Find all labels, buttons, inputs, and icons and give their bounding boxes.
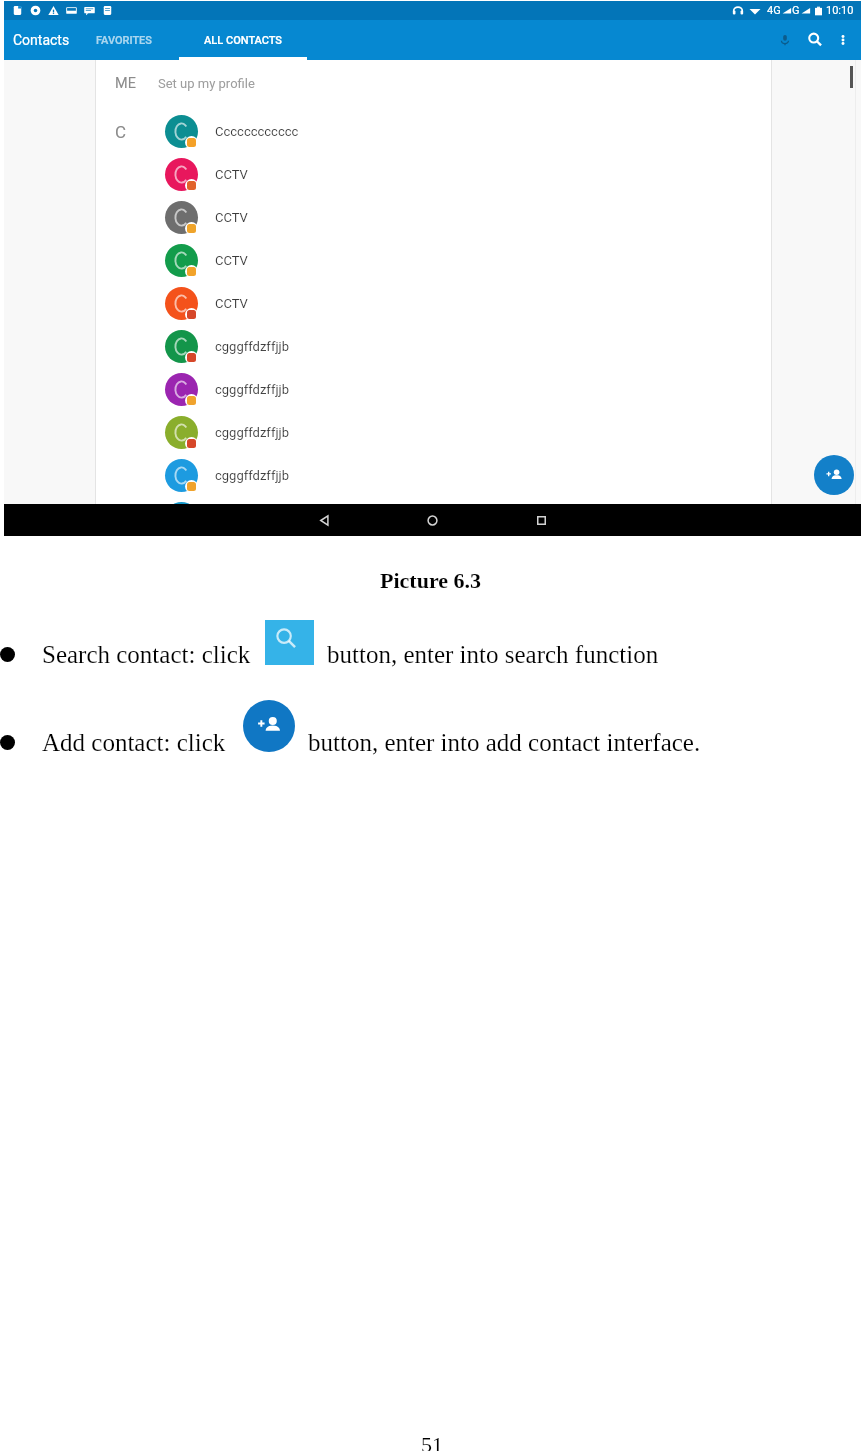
staticText: CCTV	[215, 167, 248, 182]
staticText: cgggffdzffjjb	[215, 425, 289, 440]
staticText: button, enter into search function	[327, 641, 659, 669]
button[interactable]: CCTV	[96, 153, 771, 196]
staticText: Cccccccccccc	[215, 124, 299, 139]
button[interactable]: cgggffdzffjjb	[96, 368, 771, 411]
staticText: cgggffdzffjjb	[215, 382, 289, 397]
staticText: CCTV	[215, 210, 248, 225]
staticText: FAVORITES	[96, 34, 152, 47]
staticText: 4G	[767, 4, 781, 17]
button[interactable]: Cccccccccccc	[96, 110, 771, 153]
staticText: Add contact: click	[42, 729, 226, 757]
button[interactable]: cgggffdzffjjb	[96, 454, 771, 497]
button[interactable]: cgggffdzffjjb	[96, 497, 771, 504]
staticText: CCTV	[215, 296, 248, 311]
button[interactable]: cgggffdzffjjb	[96, 325, 771, 368]
button[interactable]: CCTV	[96, 239, 771, 282]
staticText: cgggffdzffjjb	[215, 468, 289, 483]
staticText: CCTV	[215, 253, 248, 268]
button[interactable]: FAVORITES	[78, 20, 169, 60]
button[interactable]: ME	[4, 69, 861, 97]
button[interactable]: Add contact	[814, 455, 854, 495]
staticText: Set up my profile	[158, 76, 255, 91]
button[interactable]: CCTV	[96, 282, 771, 325]
staticText: 51	[421, 1432, 443, 1451]
button[interactable]: CCTV	[96, 196, 771, 239]
staticText: ME	[115, 75, 136, 92]
staticText: C	[115, 122, 127, 142]
button[interactable]: Search	[800, 25, 830, 55]
staticText: Search contact: click	[42, 641, 251, 669]
staticText: Picture 6.3	[380, 568, 482, 592]
staticText: 10:10	[826, 4, 854, 17]
button[interactable]: cgggffdzffjjb	[96, 411, 771, 454]
button[interactable]: Voice search	[770, 25, 800, 55]
button[interactable]: More options	[830, 27, 856, 53]
button[interactable]: Search	[265, 620, 314, 665]
staticText: ALL CONTACTS	[204, 34, 282, 47]
staticText: Contacts	[13, 32, 70, 48]
staticText: button, enter into add contact interface…	[308, 729, 701, 757]
button[interactable]: Add contact	[243, 700, 295, 752]
staticText: G	[792, 4, 800, 17]
button[interactable]: ALL CONTACTS	[179, 20, 307, 60]
staticText: cgggffdzffjjb	[215, 339, 289, 354]
